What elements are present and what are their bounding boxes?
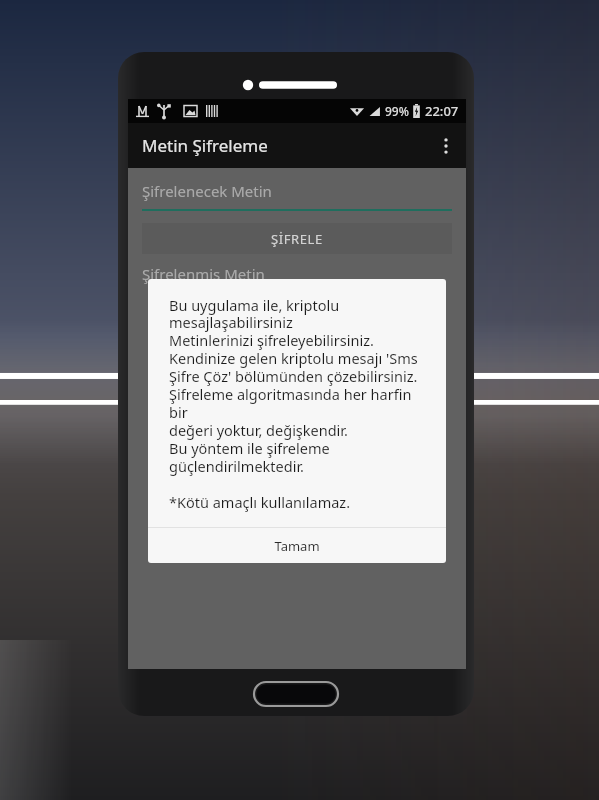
staticText: Tamam — [274, 537, 320, 555]
button[interactable]: Tamam — [148, 528, 446, 563]
staticText: Bu uygulama ile, kriptolu mesajlaşabilir… — [169, 295, 430, 513]
button[interactable]: ŞİFRELE — [142, 223, 452, 254]
staticText: 22:07 — [425, 102, 459, 120]
staticText: 99% — [385, 103, 409, 119]
staticText: Metin Şifreleme — [142, 134, 268, 157]
button[interactable]: Şifrelenecek Metin — [142, 181, 452, 211]
staticText: ŞİFRELE — [271, 230, 323, 248]
button[interactable]: More options — [426, 126, 466, 166]
staticText: Şifrelenecek Metin — [142, 181, 272, 201]
staticText: Şifrelenmiş Metin — [142, 264, 265, 284]
